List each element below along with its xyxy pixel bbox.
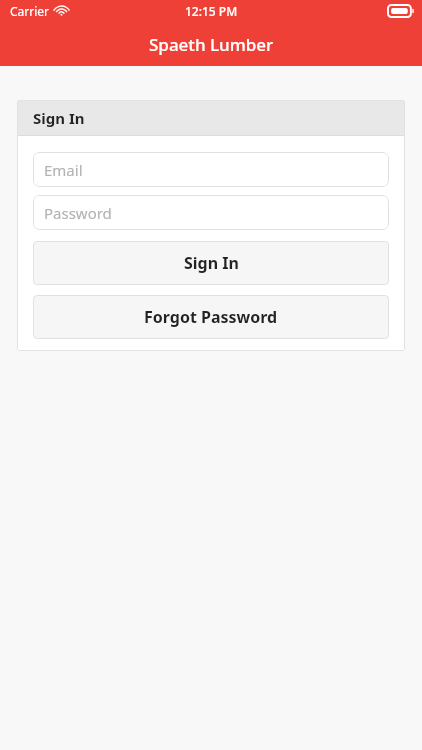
staticText: Password <box>44 203 112 223</box>
button[interactable]: Sign In <box>33 241 389 285</box>
staticText: 12:15 PM <box>185 3 238 19</box>
staticText: Forgot Password <box>144 306 278 328</box>
staticText: Sign In <box>184 252 239 274</box>
staticText: Carrier <box>10 3 50 19</box>
button[interactable]: Email <box>33 152 389 187</box>
button[interactable]: Forgot Password <box>33 295 389 339</box>
staticText: Spaeth Lumber <box>149 33 274 56</box>
button[interactable]: Password <box>33 195 389 230</box>
staticText: Email <box>44 160 83 180</box>
staticText: Sign In <box>33 108 85 128</box>
